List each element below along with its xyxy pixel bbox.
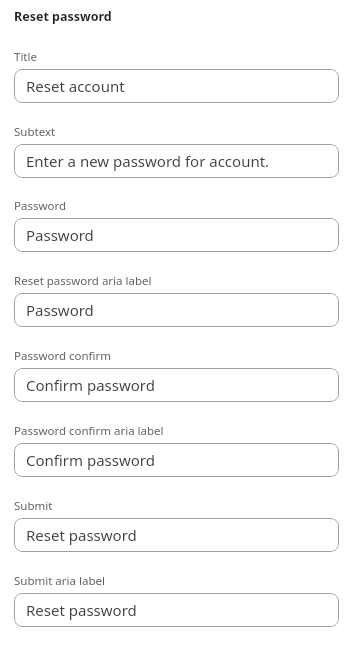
button[interactable]: Password confirm — [14, 368, 339, 402]
staticText: Reset account — [26, 76, 125, 96]
staticText: Reset password aria label — [14, 273, 152, 289]
staticText: Password — [26, 300, 94, 320]
staticText: Password confirm aria label — [14, 423, 164, 439]
staticText: Submit aria label — [14, 573, 105, 589]
staticText: Confirm password — [26, 450, 155, 470]
button[interactable]: Reset password aria label — [14, 293, 339, 327]
staticText: Password confirm — [14, 348, 112, 364]
button[interactable]: Submit aria label — [14, 593, 339, 627]
button[interactable]: Password confirm aria label — [14, 443, 339, 477]
staticText: Subtext — [14, 124, 56, 140]
staticText: Reset password — [26, 600, 137, 620]
button[interactable]: Password — [14, 218, 339, 252]
staticText: Submit — [14, 498, 53, 514]
button[interactable]: Subtext — [14, 144, 339, 178]
staticText: Reset password — [14, 8, 112, 25]
staticText: Reset password — [26, 525, 137, 545]
button[interactable]: Submit — [14, 518, 339, 552]
staticText: Enter a new password for account. — [26, 151, 270, 171]
staticText: Title — [14, 49, 37, 65]
button[interactable]: Title — [14, 69, 339, 103]
staticText: Password — [14, 198, 67, 214]
staticText: Password — [26, 225, 94, 245]
staticText: Confirm password — [26, 375, 155, 395]
